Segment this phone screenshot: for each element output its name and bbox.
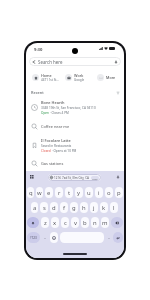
staticText: n <box>93 219 97 227</box>
staticText: Closed <box>41 149 51 153</box>
staticText: d <box>52 204 56 212</box>
staticText: Coffee near me <box>41 124 70 129</box>
staticText: Saved in Restaurants <box>41 144 72 148</box>
staticText: Copy <box>92 177 98 180</box>
button[interactable]: Back <box>29 57 121 66</box>
button[interactable]: d <box>50 202 58 213</box>
button[interactable]: Shift <box>27 217 39 228</box>
staticText: Bone Hearth <box>41 100 65 105</box>
button[interactable]: Sort <box>115 90 120 95</box>
button[interactable]: f <box>60 202 68 213</box>
staticText: b <box>83 219 87 227</box>
button[interactable]: t <box>65 187 73 198</box>
button[interactable]: Coffee near me <box>26 118 124 135</box>
staticText: u <box>87 189 91 197</box>
staticText: c <box>64 219 67 227</box>
staticText: Recent <box>31 90 44 95</box>
button[interactable]: i <box>95 187 103 198</box>
button[interactable]: z <box>41 217 49 228</box>
button[interactable]: 12 N. 7ad St, Elm City, CA <box>48 174 101 181</box>
staticText: i <box>98 189 100 197</box>
button[interactable]: Gas stations <box>26 155 124 171</box>
other: Back <box>32 60 36 64</box>
staticText: z <box>44 219 47 227</box>
button[interactable]: Home <box>32 70 64 84</box>
staticText: · Closes 4 PM <box>49 111 69 115</box>
staticText: a <box>33 204 37 212</box>
staticText: Home <box>41 73 52 78</box>
button[interactable]: Keyboard menu <box>29 174 35 180</box>
staticText: More <box>106 75 116 80</box>
staticText: k <box>102 204 106 212</box>
staticText: t <box>68 189 71 197</box>
staticText: q <box>29 189 33 197</box>
staticText: Search here <box>38 59 63 65</box>
button[interactable]: Il Focolare Latte <box>26 135 124 155</box>
staticText: y <box>77 189 81 197</box>
staticText: 4471 1st St... <box>41 78 59 82</box>
staticText: s <box>43 204 46 212</box>
button[interactable]: Enter <box>113 232 123 243</box>
button[interactable]: x <box>51 217 59 228</box>
button[interactable]: n <box>91 217 99 228</box>
staticText: Open <box>41 111 49 115</box>
button[interactable]: m <box>101 217 109 228</box>
staticText: f <box>63 204 66 212</box>
staticText: m <box>102 219 108 227</box>
staticText: j <box>93 204 95 212</box>
staticText: Work <box>74 73 84 78</box>
button[interactable]: v <box>71 217 79 228</box>
other: Voice search <box>114 60 118 64</box>
staticText: 3348 19th St, San Francisco, CA 94110 <box>41 106 96 110</box>
button[interactable]: c <box>61 217 69 228</box>
button[interactable]: Bone Hearth <box>26 97 124 118</box>
staticText: v <box>74 219 77 227</box>
button[interactable]: j <box>90 202 98 213</box>
button[interactable]: Comma <box>42 232 48 243</box>
button[interactable]: h <box>80 202 88 213</box>
button[interactable]: o <box>105 187 113 198</box>
button[interactable]: Emoji <box>50 232 58 243</box>
button[interactable]: b <box>81 217 89 228</box>
staticText: e <box>47 189 51 197</box>
staticText: 9:30 <box>34 47 43 53</box>
button[interactable]: More <box>97 70 123 84</box>
button[interactable]: k <box>100 202 108 213</box>
staticText: p <box>117 189 121 197</box>
staticText: · Opens at 10 PM <box>51 149 77 153</box>
staticText: h <box>82 204 86 212</box>
button[interactable]: l <box>110 202 118 213</box>
button[interactable]: e <box>45 187 53 198</box>
button[interactable]: Period <box>106 232 111 243</box>
staticText: r <box>58 189 61 197</box>
staticText: ?123 <box>30 236 37 240</box>
button[interactable]: a <box>31 202 38 213</box>
staticText: o <box>107 189 111 197</box>
button[interactable]: Space <box>60 232 104 243</box>
staticText: 12 N. 7ad St, Elm City, CA <box>54 176 90 180</box>
button[interactable]: r <box>55 187 63 198</box>
button[interactable]: u <box>85 187 93 198</box>
staticText: w <box>37 189 42 197</box>
button[interactable]: w <box>36 187 43 198</box>
other: Voice search <box>116 175 120 179</box>
button[interactable]: s <box>40 202 48 213</box>
staticText: l <box>113 204 115 212</box>
button[interactable]: g <box>70 202 78 213</box>
button[interactable]: p <box>115 187 123 198</box>
button[interactable]: ?123 <box>27 232 40 243</box>
staticText: x <box>53 219 57 227</box>
staticText: Il Focolare Latte <box>41 138 71 143</box>
staticText: g <box>72 204 76 212</box>
staticText: Gas stations <box>41 161 64 166</box>
staticText: Google <box>74 78 85 82</box>
button[interactable]: Backspace <box>111 217 123 228</box>
button[interactable]: Work <box>65 70 95 84</box>
button[interactable]: q <box>27 187 34 198</box>
button[interactable]: y <box>75 187 83 198</box>
